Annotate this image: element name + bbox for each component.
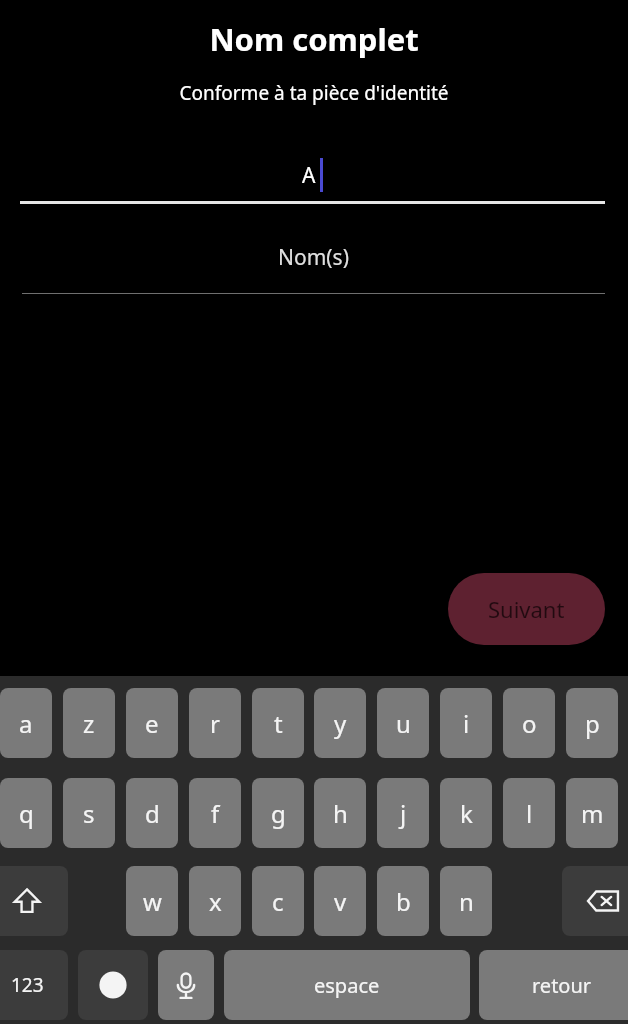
staticText: g <box>271 797 286 830</box>
button[interactable]: p <box>566 688 618 758</box>
staticText: b <box>396 885 411 918</box>
button[interactable]: b <box>377 866 429 936</box>
staticText: m <box>581 797 604 830</box>
button[interactable]: retour <box>479 950 628 1020</box>
button[interactable]: v <box>314 866 366 936</box>
button[interactable]: o <box>503 688 555 758</box>
staticText: r <box>210 707 220 740</box>
staticText: w <box>143 885 162 918</box>
staticText: z <box>83 707 95 740</box>
button[interactable]: q <box>0 778 52 848</box>
staticText: p <box>585 707 600 740</box>
staticText: v <box>334 885 347 918</box>
button[interactable]: c <box>252 866 304 936</box>
button[interactable]: h <box>314 778 366 848</box>
button[interactable]: j <box>377 778 429 848</box>
button[interactable]: y <box>314 688 366 758</box>
staticText: Conforme à ta pièce d'identité <box>0 80 628 106</box>
staticText: k <box>460 797 473 830</box>
button[interactable]: Nom(s) <box>22 204 605 294</box>
staticText: Suivant <box>488 594 565 624</box>
button[interactable]: f <box>189 778 241 848</box>
staticText: f <box>211 797 220 830</box>
button[interactable]: x <box>189 866 241 936</box>
button[interactable]: g <box>252 778 304 848</box>
button[interactable]: i <box>440 688 492 758</box>
button[interactable]: t <box>252 688 304 758</box>
staticText: q <box>19 797 34 830</box>
staticText: 123 <box>11 972 44 998</box>
button[interactable]: l <box>503 778 555 848</box>
staticText: c <box>272 885 284 918</box>
staticText: retour <box>532 972 592 999</box>
button[interactable]: A <box>20 138 605 204</box>
staticText: l <box>526 797 533 830</box>
staticText: Nom complet <box>0 18 628 60</box>
button[interactable]: w <box>126 866 178 936</box>
button[interactable]: a <box>0 688 52 758</box>
button[interactable]: z <box>63 688 115 758</box>
button[interactable]: d <box>126 778 178 848</box>
button[interactable]: Backspace <box>562 866 628 936</box>
button[interactable]: e <box>126 688 178 758</box>
button[interactable]: Shift <box>0 866 68 936</box>
staticText: s <box>83 797 95 830</box>
button[interactable]: k <box>440 778 492 848</box>
staticText: A <box>302 161 316 190</box>
button[interactable]: n <box>440 866 492 936</box>
staticText: n <box>459 885 474 918</box>
staticText: d <box>145 797 160 830</box>
staticText: j <box>400 797 407 830</box>
staticText: Nom(s) <box>22 243 605 272</box>
button[interactable]: u <box>377 688 429 758</box>
button[interactable]: Emoji <box>78 950 148 1020</box>
staticText: i <box>463 707 470 740</box>
button[interactable]: s <box>63 778 115 848</box>
button[interactable]: r <box>189 688 241 758</box>
staticText: a <box>19 707 33 740</box>
button[interactable]: espace <box>224 950 470 1020</box>
staticText: y <box>334 707 347 740</box>
staticText: espace <box>314 972 380 999</box>
staticText: t <box>274 707 283 740</box>
button[interactable]: m <box>566 778 618 848</box>
staticText: e <box>145 707 159 740</box>
button[interactable]: Voice input <box>158 950 214 1020</box>
staticText: o <box>522 707 537 740</box>
staticText: x <box>209 885 222 918</box>
staticText: h <box>333 797 348 830</box>
button[interactable]: Suivant <box>448 573 605 645</box>
button[interactable]: 123 <box>0 950 68 1020</box>
staticText: u <box>396 707 411 740</box>
